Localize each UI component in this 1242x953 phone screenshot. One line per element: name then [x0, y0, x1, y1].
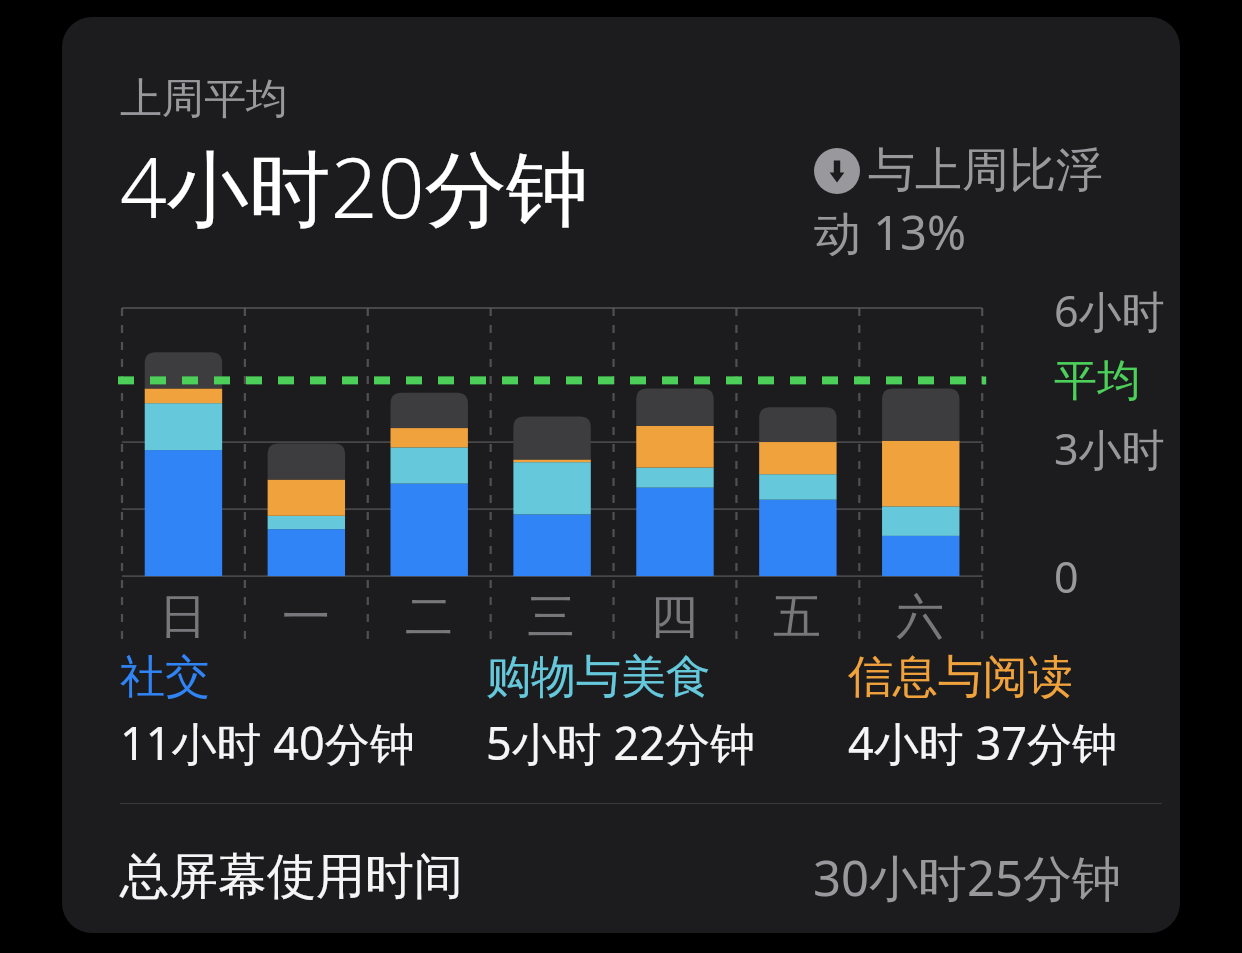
staticText: 4小时20分钟	[120, 130, 589, 242]
button[interactable]: 上周平均	[62, 17, 1180, 933]
button[interactable]: 社交	[120, 649, 470, 773]
staticText: 购物与美食	[486, 649, 711, 706]
staticText: 与上周比浮	[868, 141, 1103, 200]
button[interactable]: 总屏幕使用时间	[62, 837, 1180, 917]
staticText: 30小时25分钟	[813, 844, 1122, 911]
staticText: 平均	[1054, 354, 1140, 408]
staticText: 5小时 22分钟	[486, 712, 755, 773]
staticText: 四	[650, 587, 698, 647]
staticText: 上周平均	[120, 73, 288, 126]
staticText: 总屏幕使用时间	[120, 846, 463, 908]
staticText: 6小时	[1054, 281, 1165, 340]
staticText: 11小时 40分钟	[120, 712, 415, 773]
other: Decrease from last week	[814, 148, 860, 194]
staticText: 3小时	[1054, 419, 1165, 478]
staticText: 社交	[120, 649, 210, 706]
staticText: 三	[527, 587, 575, 647]
staticText: 二	[405, 587, 453, 647]
staticText: 五	[773, 587, 821, 647]
staticText: 0	[1054, 547, 1079, 606]
button[interactable]: 信息与阅读	[848, 649, 1180, 773]
button[interactable]: 购物与美食	[486, 649, 836, 773]
staticText: 日	[159, 587, 207, 647]
staticText: 4小时 37分钟	[848, 712, 1117, 773]
staticText: 六	[896, 587, 944, 647]
staticText: 一	[282, 587, 330, 647]
staticText: 动 13%	[814, 200, 967, 264]
staticText: 信息与阅读	[848, 649, 1073, 706]
